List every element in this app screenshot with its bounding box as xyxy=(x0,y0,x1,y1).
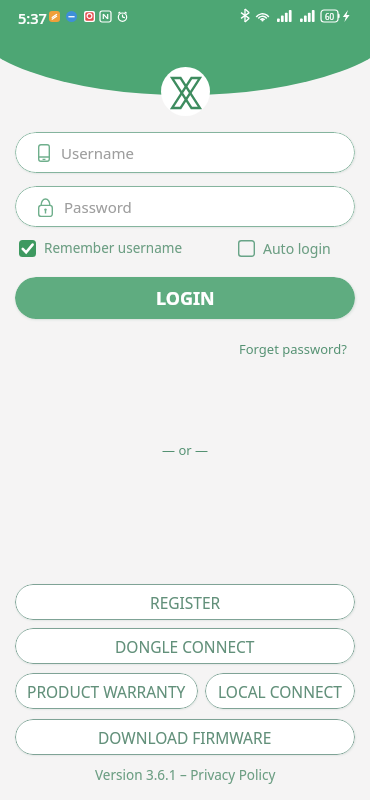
button[interactable]: LOGIN xyxy=(15,277,355,319)
staticText: Forget password? xyxy=(239,340,347,358)
button[interactable]: App logo xyxy=(161,67,210,116)
staticText: REGISTER xyxy=(150,592,221,613)
button[interactable]: Username xyxy=(15,132,355,173)
staticText: Auto login xyxy=(263,239,331,258)
staticText: 60 xyxy=(325,11,335,22)
button[interactable]: Auto login xyxy=(238,239,331,258)
button[interactable]: Remember username xyxy=(19,239,183,257)
staticText: — or — xyxy=(162,441,208,459)
staticText: DOWNLOAD FIRMWARE xyxy=(98,727,272,748)
button[interactable]: LOCAL CONNECT xyxy=(205,673,355,709)
staticText: Remember username xyxy=(44,239,183,257)
staticText: PRODUCT WARRANTY xyxy=(27,681,186,702)
button[interactable]: REGISTER xyxy=(15,584,355,620)
staticText: LOCAL CONNECT xyxy=(218,681,342,702)
button[interactable]: Version 3.6.1 – Privacy Policy xyxy=(95,766,276,784)
staticText: Password xyxy=(64,197,132,217)
staticText: Username xyxy=(61,143,134,163)
staticText: LOGIN xyxy=(156,286,215,311)
button[interactable]: PRODUCT WARRANTY xyxy=(15,673,198,709)
button[interactable]: Password xyxy=(15,186,355,227)
button[interactable]: Forget password? xyxy=(228,338,347,360)
button[interactable]: DOWNLOAD FIRMWARE xyxy=(15,719,355,755)
staticText: DONGLE CONNECT xyxy=(115,636,255,657)
staticText: 5:37 xyxy=(18,8,47,28)
button[interactable]: DONGLE CONNECT xyxy=(15,628,355,664)
